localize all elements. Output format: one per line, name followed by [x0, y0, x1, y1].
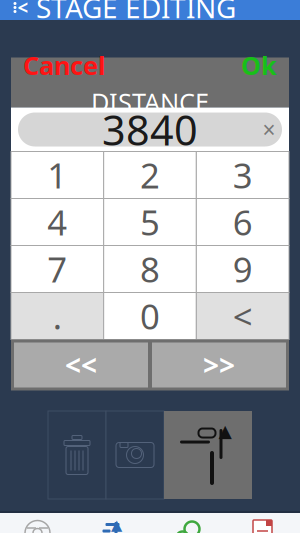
staticText: ▲	[218, 421, 231, 441]
button[interactable]: Route	[75, 512, 150, 533]
staticText: 3840	[102, 102, 198, 157]
button[interactable]: 6	[196, 198, 289, 245]
button[interactable]: 0	[104, 292, 196, 339]
staticText: DISTANCE	[91, 85, 209, 119]
staticText: <	[233, 293, 253, 339]
button[interactable]: 2	[104, 151, 196, 198]
staticText: 4	[47, 199, 67, 245]
staticText: <	[17, 0, 28, 20]
staticText: 9	[233, 246, 253, 292]
button[interactable]: Ok	[233, 46, 285, 84]
button[interactable]: 3	[196, 151, 289, 198]
button[interactable]: Settings	[150, 512, 225, 533]
staticText: 7	[47, 246, 67, 292]
staticText: 3	[233, 152, 253, 198]
staticText: Ok	[241, 48, 277, 82]
staticText: ×	[262, 114, 275, 144]
button[interactable]: Clear	[256, 112, 282, 146]
staticText: STAGE EDITING	[36, 0, 236, 26]
staticText: Cancel	[23, 48, 106, 82]
staticText: <<	[65, 346, 97, 384]
button[interactable]: 1	[11, 151, 104, 198]
staticText: 2	[140, 152, 160, 198]
button[interactable]: 4	[11, 198, 104, 245]
button[interactable]: 5	[104, 198, 196, 245]
button[interactable]: Previous	[14, 342, 148, 387]
staticText: >>	[203, 346, 235, 384]
staticText: .	[53, 293, 62, 339]
button[interactable]: <	[196, 292, 289, 339]
staticText: 6	[233, 199, 253, 245]
staticText: ▲	[111, 517, 122, 533]
button[interactable]: Cancel	[15, 46, 114, 84]
staticText: 1	[47, 152, 67, 198]
staticText: 8	[140, 246, 160, 292]
button[interactable]: 8	[104, 245, 196, 292]
button[interactable]: Documents	[225, 512, 300, 533]
button[interactable]: Dashboard	[0, 512, 75, 533]
button[interactable]: .	[11, 292, 104, 339]
button[interactable]: 7	[11, 245, 104, 292]
staticText: 5	[140, 199, 160, 245]
button[interactable]: 9	[196, 245, 289, 292]
button[interactable]: Next	[152, 342, 286, 387]
staticText: 0	[140, 293, 160, 339]
button[interactable]: Back	[6, 0, 36, 20]
